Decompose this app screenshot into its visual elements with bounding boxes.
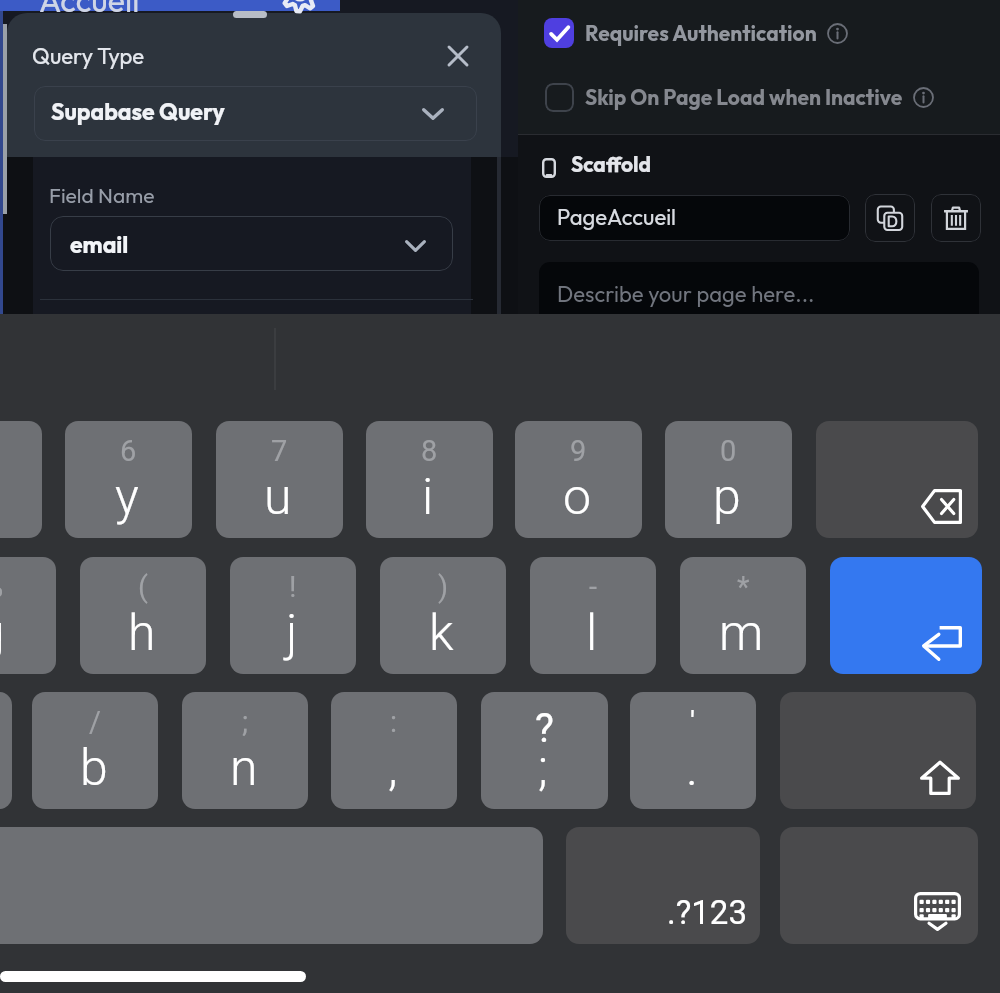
button[interactable]: Requires Authentication [544,8,848,58]
staticText: i [422,468,434,527]
staticText: 6 [120,434,137,468]
button[interactable]: PageAccueil [539,195,850,241]
button[interactable]: Skip On Page Load when Inactive [545,72,934,122]
staticText: % [0,570,4,604]
button[interactable]: 0 [665,421,792,538]
button[interactable]: % [0,557,56,674]
staticText: u [264,468,292,527]
staticText: l [586,604,598,663]
button[interactable]: Keyboard [780,827,978,944]
button[interactable]: Backspace [816,421,978,538]
button[interactable]: ? [481,692,608,809]
button[interactable]: Delete [931,194,981,242]
button[interactable]: 9 [515,421,642,538]
staticText: ; [242,705,249,739]
button[interactable]: .?123 [566,827,760,944]
staticText: k [429,604,454,663]
staticText: Supabase Query [51,97,225,126]
staticText: Query Type [32,42,145,70]
staticText: * [737,570,750,604]
staticText: , [388,739,398,798]
staticText: 0 [720,434,737,468]
button[interactable]: ; [182,692,308,809]
staticText: ; [538,739,548,798]
button[interactable]: / [32,692,158,809]
staticText: Describe your page here... [557,280,815,308]
staticText: ' [690,705,696,739]
staticText: ( [138,570,148,604]
button[interactable]: ) [380,557,506,674]
button[interactable]: ' [630,692,756,809]
staticText: 9 [570,434,587,468]
staticText: 8 [421,434,438,468]
button[interactable]: email [50,216,453,271]
staticText: Skip On Page Load when Inactive [585,84,903,110]
staticText: Field Name [49,182,155,208]
staticText: Requires Authentication [585,20,817,46]
staticText: ? [535,705,554,752]
staticText: b [80,739,108,798]
staticText: y [115,468,139,527]
button[interactable]: Describe your page here... [539,262,979,314]
staticText: PageAccueil [557,203,676,231]
button[interactable]: Supabase Query [34,86,477,141]
button[interactable]: * [680,557,806,674]
staticText: - [589,570,598,604]
staticText: email [70,230,129,259]
staticText: ) [438,570,449,604]
button[interactable]: " [0,692,12,809]
staticText: . [686,739,698,798]
button[interactable]: 8 [366,421,493,538]
button[interactable]: 6 [65,421,192,538]
staticText: 7 [271,434,288,468]
staticText: .?123 [667,893,747,932]
staticText: m [719,604,764,663]
staticText: Accueil [39,0,140,20]
staticText: j [286,604,298,663]
button[interactable]: Enter [830,557,982,674]
staticText: p [713,468,741,527]
button[interactable]: ! [230,557,356,674]
staticText: ! [289,570,297,604]
staticText: n [230,739,258,798]
button[interactable]: - [530,557,656,674]
button[interactable]: 5 [0,421,42,538]
button[interactable]: Shift [780,692,976,809]
button[interactable]: : [331,692,457,809]
staticText: / [89,705,101,739]
button[interactable]: Duplicate [865,194,915,242]
staticText: h [128,604,156,663]
button[interactable]: 7 [216,421,343,538]
staticText: g [0,604,5,663]
staticText: Scaffold [571,151,652,177]
staticText: o [563,468,592,527]
staticText: : [390,705,398,739]
button[interactable]: Close [432,30,484,82]
button[interactable]: ( [80,557,206,674]
